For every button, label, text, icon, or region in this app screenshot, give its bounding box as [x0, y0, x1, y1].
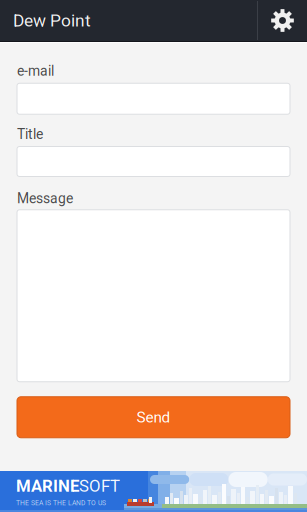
staticText: Send: [136, 408, 170, 426]
staticText: MARINE: [16, 476, 79, 496]
staticText: THE SEA IS THE LAND TO US: [16, 499, 106, 507]
button[interactable]: [17, 146, 290, 176]
staticText: e-mail: [17, 63, 54, 79]
button[interactable]: MarineSoft advertisement: [0, 471, 307, 512]
button[interactable]: Settings: [258, 0, 307, 41]
staticText: Dew Point: [13, 10, 91, 31]
staticText: SOFT: [79, 476, 120, 496]
button[interactable]: [17, 83, 290, 114]
staticText: Message: [17, 190, 73, 207]
staticText: Title: [17, 126, 43, 143]
button[interactable]: Send: [17, 397, 290, 438]
